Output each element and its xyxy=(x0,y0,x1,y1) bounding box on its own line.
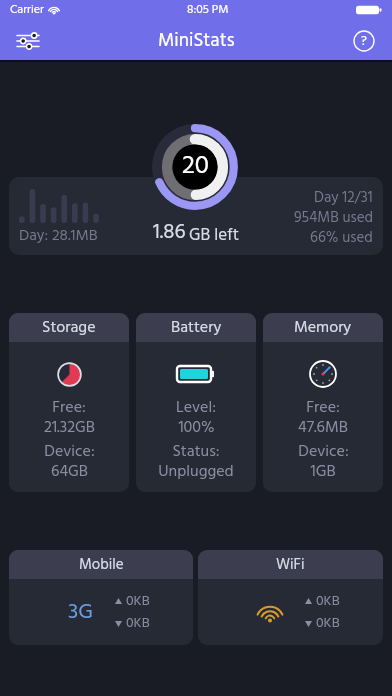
staticText: Battery xyxy=(171,315,222,341)
staticText: Free: xyxy=(306,395,340,415)
staticText: 66% used xyxy=(310,226,373,246)
staticText: Free: xyxy=(52,395,86,415)
button[interactable]: Memory xyxy=(263,313,383,492)
staticText: 1.86 xyxy=(153,216,186,250)
staticText: MiniStats xyxy=(158,26,235,56)
staticText: 954MB used xyxy=(294,206,373,226)
staticText: WiFi xyxy=(276,553,305,577)
staticText: 0KB xyxy=(126,590,150,612)
staticText: 64GB xyxy=(51,459,88,479)
staticText: 20 xyxy=(182,146,209,188)
staticText: 0KB xyxy=(316,590,340,612)
staticText: 0KB xyxy=(126,612,150,634)
staticText: Storage xyxy=(42,315,96,341)
staticText: Device: xyxy=(44,439,95,459)
staticText: Level: xyxy=(176,395,216,415)
staticText: 21.32GB xyxy=(44,415,95,435)
staticText: 0KB xyxy=(316,612,340,634)
staticText: GB left xyxy=(189,222,239,249)
staticText: ? xyxy=(361,31,367,52)
staticText: Unplugged xyxy=(158,459,234,479)
staticText: 3G xyxy=(68,595,93,630)
staticText: Status: xyxy=(172,439,220,459)
button[interactable]: Day: 28.1MB xyxy=(9,177,383,255)
button[interactable]: Mobile xyxy=(9,550,193,645)
button[interactable]: Storage xyxy=(9,313,129,492)
button[interactable]: Help xyxy=(344,22,384,60)
button[interactable]: WiFi xyxy=(198,550,383,645)
staticText: Carrier xyxy=(10,0,44,19)
staticText: Device: xyxy=(298,439,349,459)
staticText: Mobile xyxy=(79,553,124,577)
staticText: 47.6MB xyxy=(298,415,348,435)
staticText: Day: 28.1MB xyxy=(19,224,98,249)
button[interactable]: Battery xyxy=(136,313,256,492)
staticText: 100% xyxy=(178,415,215,435)
staticText: 8:05 PM xyxy=(187,0,229,19)
staticText: Day 12/31 xyxy=(314,186,373,206)
staticText: Memory xyxy=(294,315,352,341)
staticText: 1GB xyxy=(310,459,336,479)
button[interactable]: Settings xyxy=(8,22,48,60)
